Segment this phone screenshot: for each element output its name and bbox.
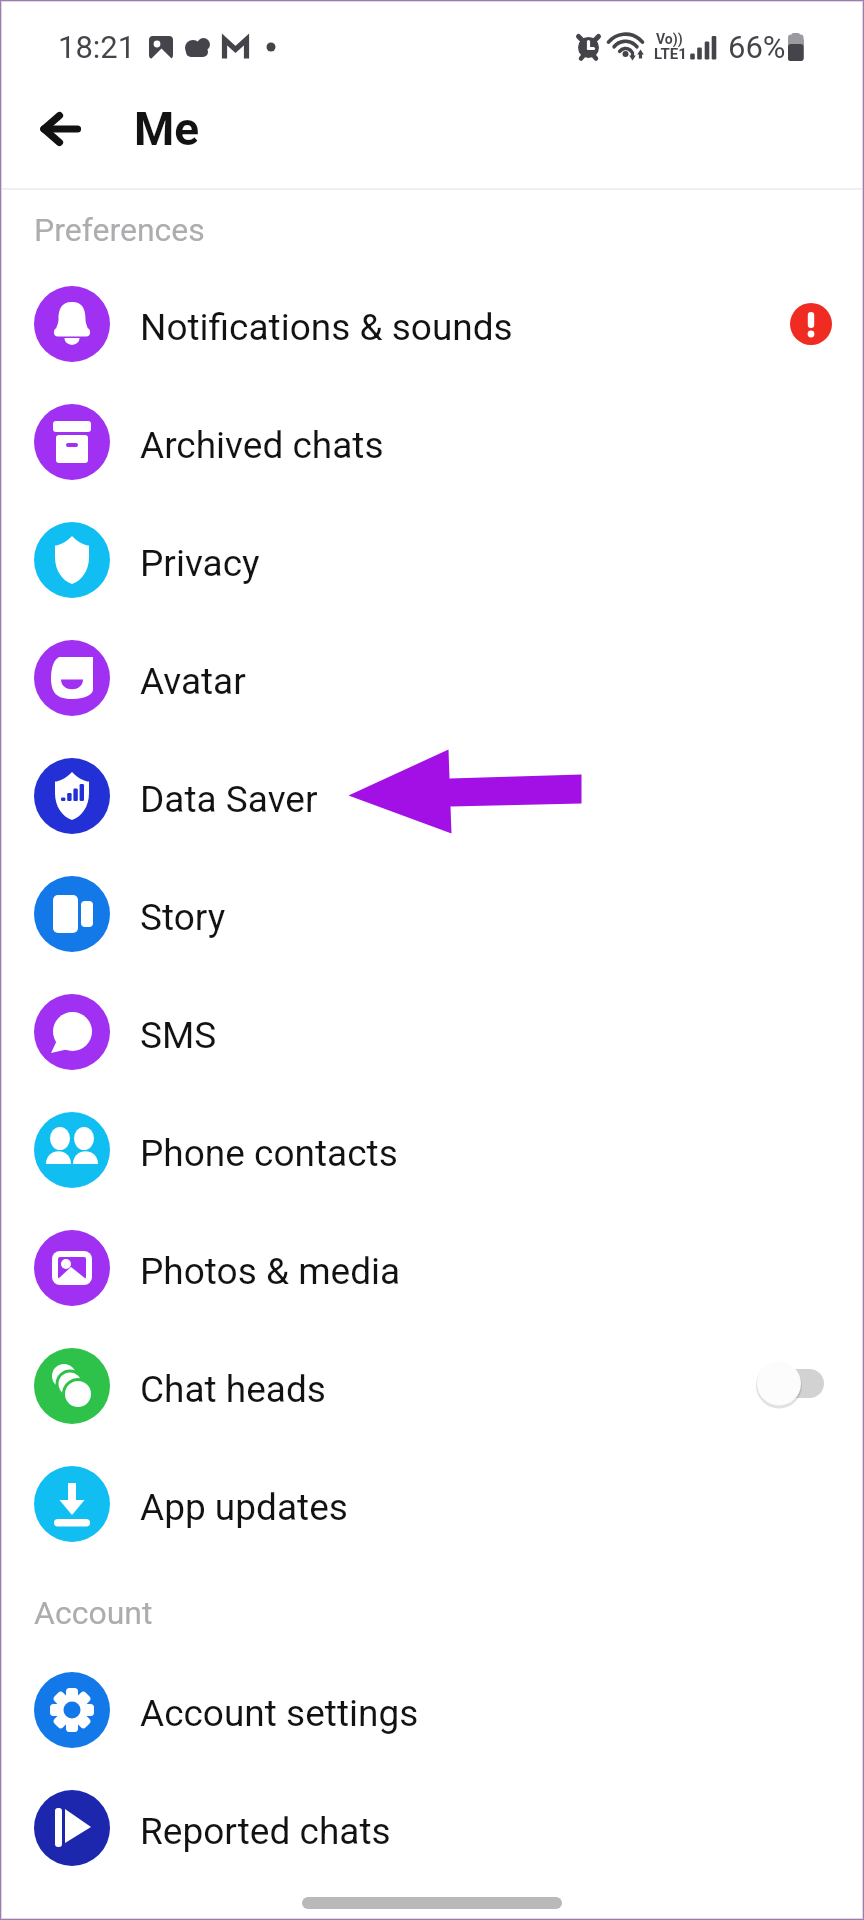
staticText: Preferences	[34, 211, 205, 249]
button[interactable]: Reported chats	[0, 1769, 864, 1887]
button[interactable]: Story	[0, 855, 864, 973]
staticText: SMS	[140, 1014, 217, 1057]
staticText: 66%	[728, 29, 786, 65]
button[interactable]: App updates	[0, 1445, 864, 1563]
staticText: Archived chats	[140, 424, 384, 467]
staticText: Data Saver	[140, 778, 318, 821]
staticText: LTE1	[654, 45, 687, 63]
button[interactable]: Data Saver	[0, 737, 864, 855]
staticText: Photos & media	[140, 1250, 401, 1293]
staticText: Story	[140, 896, 226, 939]
staticText: Phone contacts	[140, 1132, 398, 1175]
button[interactable]: Notifications & sounds	[0, 265, 864, 383]
button[interactable]: Phone contacts	[0, 1091, 864, 1209]
staticText: Vo))	[656, 31, 683, 47]
button[interactable]: Avatar	[0, 619, 864, 737]
staticText: Account	[34, 1594, 153, 1632]
staticText: Avatar	[140, 660, 246, 703]
staticText: Chat heads	[140, 1368, 326, 1411]
staticText: Notifications & sounds	[140, 306, 513, 349]
button[interactable]: Archived chats	[0, 383, 864, 501]
staticText: App updates	[140, 1486, 348, 1529]
button[interactable]: Photos & media	[0, 1209, 864, 1327]
button[interactable]: Chat heads	[0, 1327, 864, 1445]
staticText: Privacy	[140, 542, 260, 585]
button[interactable]: Privacy	[0, 501, 864, 619]
staticText: 18:21	[58, 29, 136, 65]
button[interactable]: SMS	[0, 973, 864, 1091]
staticText: Me	[134, 102, 200, 156]
button[interactable]: Back	[16, 89, 96, 169]
staticText: Account settings	[140, 1692, 419, 1735]
button[interactable]: Account settings	[0, 1651, 864, 1769]
staticText: Reported chats	[140, 1810, 391, 1853]
